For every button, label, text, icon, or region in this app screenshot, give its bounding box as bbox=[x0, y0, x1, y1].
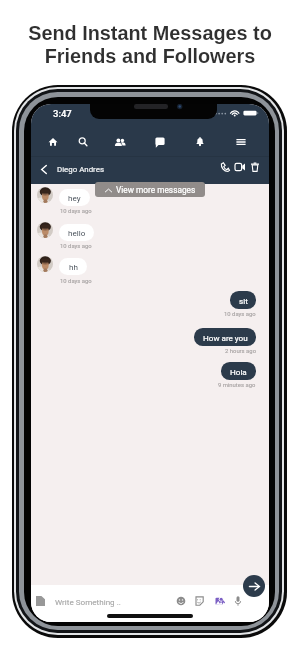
button[interactable]: Friends bbox=[109, 131, 131, 153]
button[interactable]: Search bbox=[72, 131, 94, 153]
button[interactable]: Back bbox=[35, 158, 54, 183]
button[interactable]: View more messages bbox=[95, 182, 205, 197]
staticText: Send Instant Messages to bbox=[0, 22, 300, 44]
staticText: 3:47 bbox=[53, 108, 72, 119]
button[interactable]: Send bbox=[243, 575, 265, 597]
button[interactable]: Menu bbox=[230, 131, 252, 153]
button[interactable]: Messages bbox=[149, 131, 171, 153]
button[interactable]: hey bbox=[59, 189, 90, 206]
button[interactable]: Delete bbox=[246, 158, 264, 176]
staticText: slt bbox=[239, 296, 248, 305]
button[interactable] bbox=[35, 158, 151, 183]
button[interactable]: Hola bbox=[221, 362, 256, 380]
staticText: 10 days ago bbox=[60, 208, 92, 215]
staticText: 2 hours ago bbox=[225, 348, 256, 355]
staticText: Diego Andres bbox=[57, 165, 104, 174]
staticText: Write Something .. bbox=[55, 597, 121, 606]
staticText: hh bbox=[69, 262, 78, 271]
button[interactable]: Stickers bbox=[190, 592, 208, 610]
staticText: 10 days ago bbox=[224, 311, 256, 318]
staticText: Hola bbox=[230, 367, 247, 376]
button[interactable]: Video call bbox=[231, 158, 249, 176]
button[interactable]: hh bbox=[59, 258, 87, 275]
staticText: hey bbox=[68, 193, 81, 202]
button[interactable]: slt bbox=[230, 291, 256, 309]
staticText: Friends and Followers bbox=[0, 45, 300, 67]
button[interactable]: Call bbox=[216, 158, 234, 176]
staticText: View more messages bbox=[116, 185, 196, 195]
button[interactable]: Emoji bbox=[172, 592, 190, 610]
button[interactable]: Voice message bbox=[229, 592, 247, 610]
button[interactable]: Image search bbox=[211, 592, 229, 610]
button[interactable]: How are you bbox=[194, 328, 256, 346]
staticText: 9 minutes ago bbox=[218, 382, 256, 389]
staticText: 10 days ago bbox=[60, 278, 92, 285]
staticText: How are you bbox=[203, 333, 248, 342]
button[interactable]: hello bbox=[59, 224, 94, 241]
staticText: 10 days ago bbox=[60, 243, 92, 250]
button[interactable]: Home bbox=[42, 131, 64, 153]
staticText: hello bbox=[68, 228, 86, 237]
button[interactable]: Notifications bbox=[189, 131, 211, 153]
